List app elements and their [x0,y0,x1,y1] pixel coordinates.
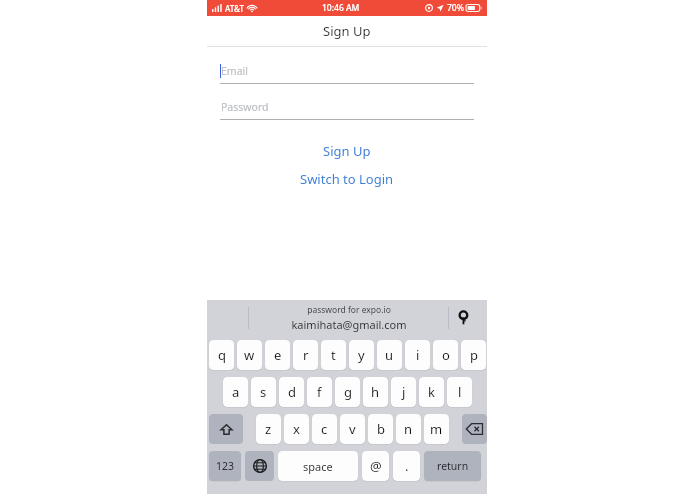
button[interactable]: Email [220,59,474,83]
button[interactable]: o [433,340,458,370]
staticText: j [402,383,406,401]
staticText: p [470,346,478,364]
staticText: f [317,383,322,401]
button[interactable]: Password [220,95,474,119]
staticText: e [274,346,282,364]
staticText: u [385,346,394,364]
button[interactable]: c [312,414,337,444]
staticText: r [303,346,309,364]
staticText: z [265,420,272,438]
staticText: space [303,459,333,474]
staticText: k [428,383,435,401]
staticText: d [288,383,296,401]
staticText: w [244,346,255,364]
staticText: 123 [216,459,235,473]
staticText: AT&T [225,3,244,14]
button[interactable]: y [349,340,374,370]
button[interactable]: b [368,414,393,444]
button[interactable]: space [278,451,358,481]
staticText: n [404,420,413,438]
button[interactable]: x [284,414,309,444]
button[interactable]: z [256,414,281,444]
button[interactable]: j [391,377,416,407]
button[interactable]: u [377,340,402,370]
button[interactable]: Sign Up [207,140,487,162]
button[interactable]: Backspace [462,414,487,444]
staticText: Sign Up [323,142,371,160]
button[interactable]: n [396,414,421,444]
button[interactable]: Passwords [453,307,475,329]
staticText: return [437,459,469,473]
button[interactable]: k [419,377,444,407]
staticText: a [232,383,240,401]
staticText: o [442,346,450,364]
staticText: s [260,383,267,401]
staticText: . [405,457,409,475]
staticText: @ [370,457,382,475]
button[interactable]: s [251,377,276,407]
button[interactable]: t [321,340,346,370]
staticText: password for expo.io [307,304,391,316]
button[interactable]: @ [362,451,389,481]
staticText: g [344,383,352,401]
button[interactable]: Change keyboard [245,451,274,481]
staticText: q [218,346,226,364]
staticText: Password [221,100,269,114]
button[interactable]: i [405,340,430,370]
staticText: Sign Up [323,22,371,40]
staticText: 10:46 AM [322,2,360,14]
button[interactable]: l [447,377,472,407]
staticText: b [377,420,385,438]
button[interactable]: a [223,377,248,407]
button[interactable]: return [424,451,481,481]
button[interactable]: e [265,340,290,370]
staticText: Email [221,64,248,78]
button[interactable]: q [209,340,234,370]
button[interactable]: h [363,377,388,407]
staticText: 70% [447,2,464,14]
staticText: l [458,383,462,401]
button[interactable]: Shift [209,414,243,444]
staticText: Switch to Login [300,170,394,188]
staticText: v [349,420,356,438]
button[interactable]: 123 [209,451,241,481]
button[interactable]: . [393,451,420,481]
button[interactable]: v [340,414,365,444]
staticText: i [416,346,420,364]
button[interactable]: r [293,340,318,370]
button[interactable]: g [335,377,360,407]
staticText: c [321,420,328,438]
button[interactable]: f [307,377,332,407]
button[interactable]: m [424,414,449,444]
button[interactable]: w [237,340,262,370]
staticText: kaimihata@gmail.com [291,317,407,332]
staticText: m [430,420,443,438]
button[interactable]: p [461,340,486,370]
button[interactable]: Switch to Login [207,168,487,190]
button[interactable]: d [279,377,304,407]
staticText: y [358,346,365,364]
staticText: x [293,420,300,438]
staticText: h [371,383,380,401]
button[interactable]: password for expo.io [249,300,448,336]
staticText: t [331,346,336,364]
